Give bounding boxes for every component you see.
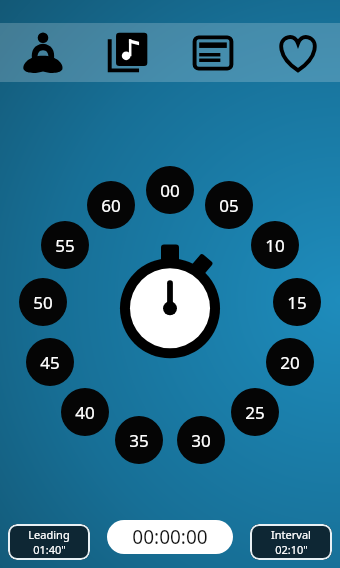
staticText: 00 <box>160 179 180 202</box>
staticText: 15 <box>287 291 307 314</box>
staticText: 02:10" <box>275 542 308 557</box>
button[interactable]: 15 <box>273 278 321 326</box>
staticText: 25 <box>245 401 265 424</box>
button[interactable]: Leading <box>8 524 90 560</box>
staticText: 40 <box>75 401 95 424</box>
staticText: 55 <box>55 234 75 257</box>
button[interactable]: 50 <box>19 278 67 326</box>
button[interactable]: Music <box>85 23 170 82</box>
button[interactable]: 00 <box>146 166 194 214</box>
staticText: 00:00:00 <box>132 524 208 550</box>
button[interactable]: 30 <box>177 416 225 464</box>
staticText: Interval <box>271 527 311 542</box>
button[interactable]: 35 <box>115 416 163 464</box>
button[interactable]: 05 <box>205 181 253 229</box>
button[interactable]: 60 <box>87 181 135 229</box>
button[interactable]: Favourites <box>255 23 340 82</box>
staticText: 45 <box>40 351 60 374</box>
staticText: 01:40" <box>33 542 66 557</box>
button[interactable]: 20 <box>266 338 314 386</box>
staticText: 10 <box>265 234 285 257</box>
button[interactable]: 55 <box>41 221 89 269</box>
button[interactable]: 40 <box>61 388 109 436</box>
button[interactable]: Stopwatch <box>110 242 230 372</box>
button[interactable]: 25 <box>231 388 279 436</box>
button[interactable]: Articles <box>170 23 255 82</box>
staticText: 35 <box>129 429 149 452</box>
button[interactable]: 00:00:00 <box>107 520 233 554</box>
button[interactable]: Interval <box>250 524 332 560</box>
staticText: 30 <box>191 429 211 452</box>
staticText: 05 <box>219 194 239 217</box>
button[interactable]: 10 <box>251 221 299 269</box>
staticText: 20 <box>280 351 300 374</box>
staticText: 50 <box>33 291 53 314</box>
staticText: Leading <box>28 527 70 542</box>
button[interactable]: Meditation <box>0 23 85 82</box>
staticText: 60 <box>101 194 121 217</box>
button[interactable]: 45 <box>26 338 74 386</box>
